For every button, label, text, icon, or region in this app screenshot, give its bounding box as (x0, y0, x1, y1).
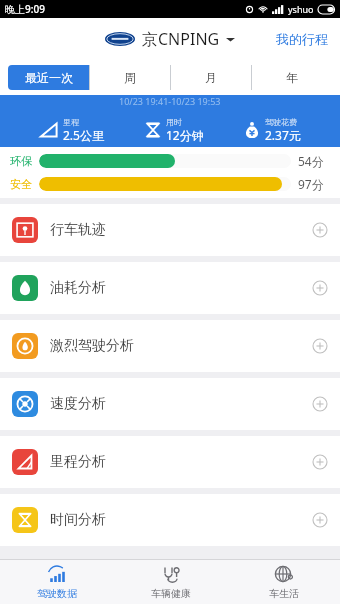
staticText: 环保 (10, 154, 32, 168)
staticText: 10/23 19:41-10/23 19:53 (119, 95, 221, 107)
other: 展开 速度分析 (312, 396, 328, 412)
staticText: 激烈驾驶分析 (50, 337, 134, 355)
staticText: 12分钟 (166, 127, 204, 143)
button[interactable]: 速度分析 (0, 378, 340, 430)
button[interactable]: 时间分析 (0, 494, 340, 546)
button[interactable]: 最近一次 (8, 65, 89, 90)
staticText: 月 (205, 70, 217, 85)
staticText: 速度分析 (50, 395, 106, 413)
button[interactable]: 月 (171, 65, 251, 90)
other: 展开 行车轨迹 (312, 222, 328, 238)
staticText: 驾驶花费 (265, 117, 297, 127)
staticText: 最近一次 (25, 70, 73, 85)
staticText: 用时 (166, 117, 182, 127)
staticText: 周 (124, 70, 136, 85)
staticText: 里程 (63, 117, 79, 127)
staticText: 车生活 (269, 587, 299, 600)
staticText: 车辆健康 (151, 587, 191, 600)
button[interactable]: 车辆健康 (114, 560, 227, 604)
staticText: 54分 (298, 153, 330, 169)
button[interactable]: 周 (90, 65, 170, 90)
button[interactable]: 里程分析 (0, 436, 340, 488)
other: 展开 里程分析 (312, 454, 328, 470)
staticText: 驾驶数据 (37, 587, 77, 600)
staticText: 行车轨迹 (50, 221, 106, 239)
staticText: 晚上9:09 (5, 2, 45, 16)
other: 展开 油耗分析 (312, 280, 328, 296)
staticText: yshuo (288, 3, 314, 15)
staticText: 我的行程 (276, 31, 328, 47)
button[interactable]: 年 (252, 65, 332, 90)
button[interactable]: 激烈驾驶分析 (0, 320, 340, 372)
staticText: 里程分析 (50, 453, 106, 471)
button[interactable]: 我的行程 (264, 23, 340, 55)
staticText: 京CNPING (142, 28, 220, 50)
staticText: 2.5公里 (63, 127, 104, 143)
button[interactable]: 行车轨迹 (0, 204, 340, 256)
other: 展开 时间分析 (312, 512, 328, 528)
staticText: 97分 (298, 176, 330, 192)
button[interactable]: 京CNPING (105, 28, 235, 50)
staticText: 油耗分析 (50, 279, 106, 297)
button[interactable]: 驾驶数据 (0, 560, 114, 604)
staticText: 2.37元 (265, 127, 301, 143)
staticText: 年 (286, 70, 298, 85)
button[interactable]: 油耗分析 (0, 262, 340, 314)
button[interactable]: 车生活 (227, 560, 340, 604)
staticText: 时间分析 (50, 511, 106, 529)
other: 展开 激烈驾驶分析 (312, 338, 328, 354)
staticText: 安全 (10, 177, 32, 191)
